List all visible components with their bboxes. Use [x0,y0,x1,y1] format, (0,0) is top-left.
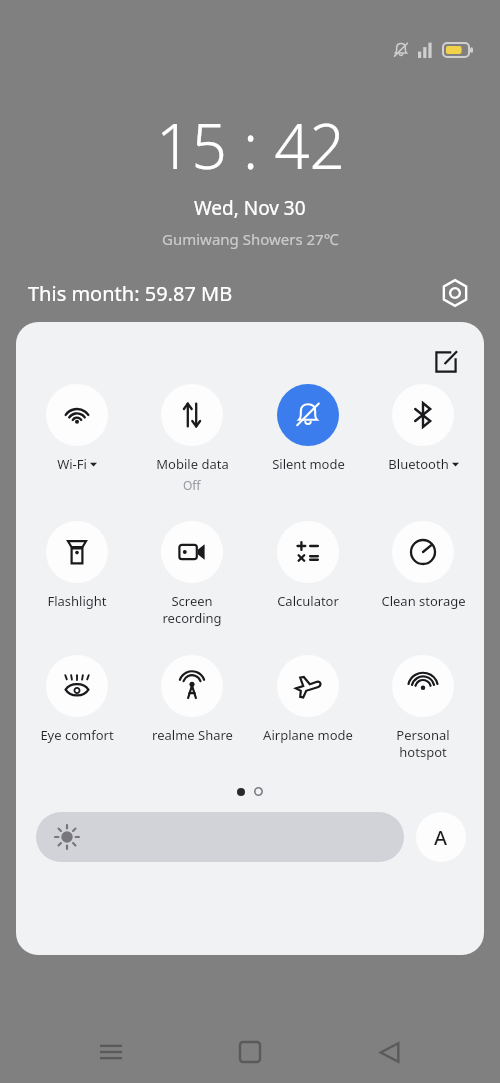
button[interactable]: Eye comfort [23,655,131,744]
button[interactable]: Back [361,1024,417,1080]
button[interactable]: Mobile data [138,384,246,493]
button[interactable]: Flashlight [23,521,131,610]
staticText: Bluetooth [388,455,449,473]
button[interactable]: Recents [83,1024,139,1080]
staticText: Eye comfort [40,726,114,744]
button[interactable]: Personal hotspot [369,655,477,761]
staticText: This month: 59.87 MB [28,280,233,307]
button[interactable]: Screen recording [138,521,246,627]
staticText: Wi-Fi [57,455,87,473]
button[interactable]: A [416,812,466,862]
button[interactable]: Brightness [36,812,404,862]
button[interactable]: Calculator [254,521,362,610]
button[interactable]: Bluetooth [369,384,477,473]
staticText: Gumiwang Showers 27℃ [162,229,339,249]
button[interactable]: Clean storage [369,521,477,610]
button[interactable]: Edit quick settings [426,342,466,382]
staticText: Flashlight [47,592,107,610]
button[interactable]: Wi-Fi [23,384,131,473]
staticText: A [434,824,448,851]
staticText: Silent mode [272,455,345,473]
staticText: Off [183,477,201,493]
staticText: Clean storage [381,592,466,610]
staticText: realme Share [152,726,233,744]
staticText: Personal hotspot [396,726,450,761]
button[interactable]: Airplane mode [254,655,362,744]
button[interactable]: realme Share [138,655,246,744]
staticText: Airplane mode [263,726,353,744]
button[interactable]: Silent mode [254,384,362,473]
button[interactable]: Settings [438,276,472,310]
staticText: Screen recording [162,592,222,627]
staticText: Mobile data [156,455,229,473]
staticText: Calculator [277,592,339,610]
staticText: Wed, Nov 30 [194,195,306,221]
button[interactable]: Home [222,1024,278,1080]
staticText: 15 : 42 [156,103,345,187]
